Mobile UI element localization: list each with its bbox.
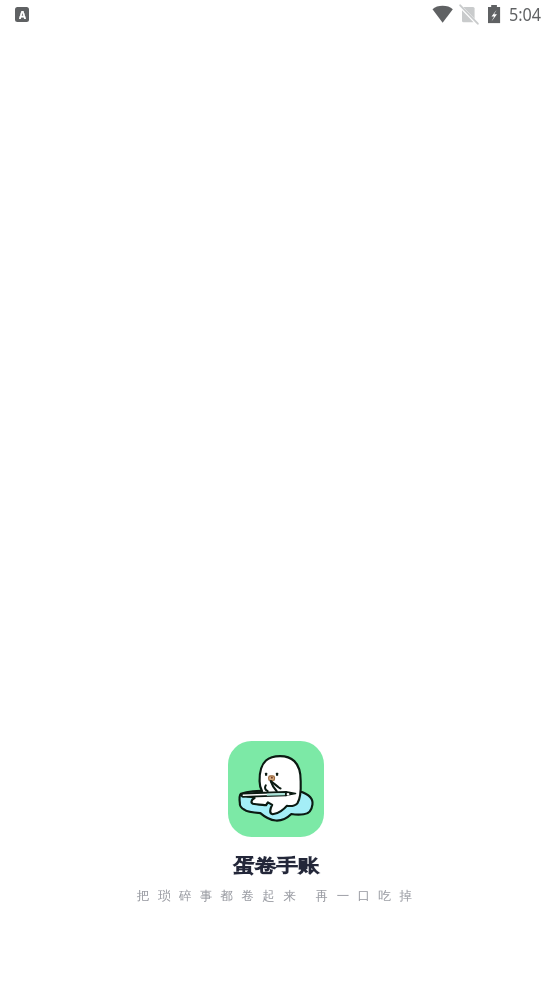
staticText: A — [19, 8, 26, 22]
staticText: 把琐碎事都卷起来 再一口吃掉 — [137, 887, 421, 904]
staticText: 蛋卷手账 — [233, 854, 319, 877]
button[interactable]: App notification — [15, 7, 29, 22]
staticText: 5:04 — [509, 2, 541, 27]
button[interactable]: App logo — [228, 741, 324, 837]
